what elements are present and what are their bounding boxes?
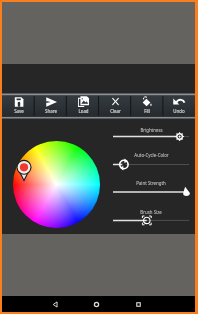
button[interactable]: Share [35,93,67,119]
button[interactable]: Paint Strength [104,178,198,200]
button[interactable]: Load [67,93,99,119]
staticText: Share [45,108,57,114]
button[interactable]: Brush Size [104,207,198,228]
staticText: Load [78,108,89,114]
button[interactable]: Auto-Cycle-Color [104,150,198,173]
button[interactable]: Recents [129,296,148,312]
button[interactable]: Brightness [104,125,198,145]
staticText: Fill [144,108,150,114]
staticText: Clear [110,108,121,114]
staticText: Save [14,108,24,114]
staticText: Auto-Cycle-Color [134,152,169,158]
button[interactable]: Back [46,296,65,312]
button[interactable]: Save [2,93,35,119]
staticText: Paint Strength [136,180,166,186]
button[interactable]: Fill [131,93,163,119]
button[interactable]: Clear [99,93,131,119]
button[interactable]: Undo [163,93,195,119]
staticText: Brightness [140,127,163,133]
staticText: Brush Size [140,209,162,215]
button[interactable]: Home [87,296,106,312]
staticText: Undo [173,108,185,114]
